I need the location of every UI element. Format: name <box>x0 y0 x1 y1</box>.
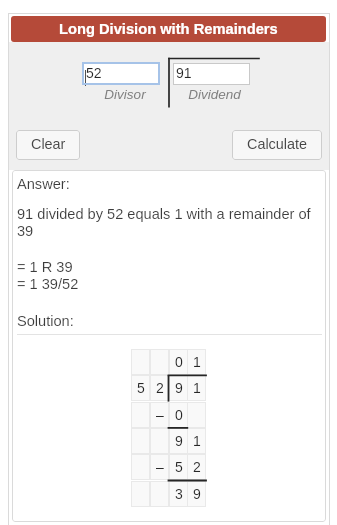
staticText: 9 <box>175 380 183 396</box>
staticText: Answer: <box>17 176 70 192</box>
staticText: 52 <box>86 65 102 81</box>
button[interactable]: Divisor input <box>82 62 160 85</box>
staticText: 0 <box>175 354 183 370</box>
staticText: 1 <box>193 380 201 396</box>
staticText: Clear <box>31 136 66 152</box>
staticText: Long Division with Remainders <box>59 21 278 37</box>
staticText: 1 <box>193 354 201 370</box>
staticText: 39 <box>17 223 34 239</box>
staticText: 5 <box>137 380 145 396</box>
staticText: – <box>156 407 164 423</box>
staticText: 5 <box>175 459 183 475</box>
staticText: 9 <box>175 433 183 449</box>
staticText: 2 <box>156 380 164 396</box>
button[interactable]: Dividend input <box>173 63 250 85</box>
staticText: = 1 R 39 <box>17 259 73 275</box>
staticText: 0 <box>175 407 183 423</box>
staticText: Dividend <box>176 87 253 102</box>
staticText: – <box>156 459 164 475</box>
button[interactable]: Calculate <box>232 130 322 160</box>
staticText: 91 <box>176 65 192 81</box>
staticText: = 1 39/52 <box>17 276 79 292</box>
staticText: 3 <box>175 486 183 502</box>
staticText: Divisor <box>86 87 164 102</box>
button[interactable]: Clear <box>16 130 80 160</box>
staticText: Solution: <box>17 313 74 329</box>
staticText: 9 <box>193 486 201 502</box>
staticText: 2 <box>193 459 201 475</box>
staticText: 1 <box>193 433 201 449</box>
button[interactable]: Long Division with Remainders <box>11 16 326 42</box>
staticText: Calculate <box>247 136 307 152</box>
staticText: 91 divided by 52 equals 1 with a remaind… <box>17 206 311 222</box>
